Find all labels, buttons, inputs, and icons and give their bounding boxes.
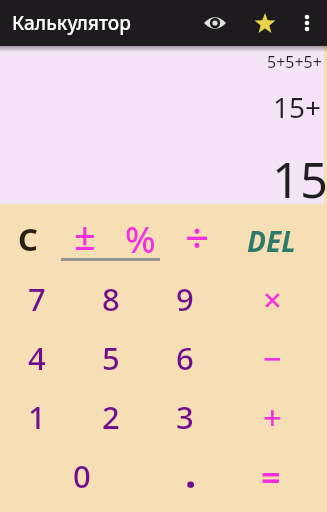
button[interactable] [245,3,285,43]
staticText: % [125,215,156,264]
staticText: 0 [73,455,91,497]
staticText: 3 [176,396,194,438]
button[interactable] [195,3,235,43]
button[interactable]: 1 [5,391,69,443]
staticText: 4 [28,337,46,379]
button[interactable]: 3 [153,391,217,443]
button[interactable]: × [240,273,304,325]
button[interactable]: 0 [50,450,114,502]
button[interactable]: 6 [153,332,217,384]
staticText: 2 [102,396,120,438]
staticText: 15+ [273,88,322,126]
button[interactable]: % [108,213,172,265]
button[interactable]: 7 [5,273,69,325]
button[interactable]: C [0,213,60,265]
staticText: = [261,454,281,500]
staticText: 6 [176,337,194,379]
button[interactable]: 2 [79,391,143,443]
button[interactable]: = [239,451,303,503]
staticText: . [185,445,197,497]
button[interactable]: ÷ [165,208,229,260]
button[interactable]: DEL [226,215,316,267]
staticText: Калькулятор [12,10,131,36]
staticText: 15 [272,146,327,213]
staticText: DEL [247,222,296,260]
staticText: 5 [102,337,120,379]
button[interactable]: ± [53,209,117,261]
staticText: 9 [176,278,194,320]
button[interactable]: . [159,445,223,497]
button[interactable]: 5 [79,332,143,384]
staticText: − [263,336,282,381]
staticText: 7 [28,278,46,320]
button[interactable] [289,5,325,41]
button[interactable]: 4 [5,332,69,384]
staticText: × [263,277,282,322]
staticText: 5+5+5+ [267,51,322,73]
staticText: 1 [28,396,46,438]
button[interactable]: 9 [153,273,217,325]
staticText: 8 [102,278,120,320]
button[interactable]: + [240,391,304,443]
button[interactable]: − [240,332,304,384]
staticText: ± [74,209,96,261]
staticText: + [263,395,282,440]
staticText: ÷ [185,208,210,260]
button[interactable]: 8 [79,273,143,325]
staticText: C [18,218,38,260]
